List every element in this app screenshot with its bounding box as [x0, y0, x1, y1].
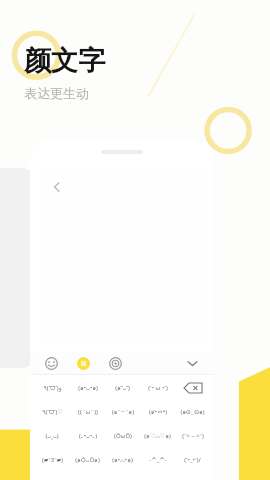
button[interactable]: (▰˘3˘▰)	[34, 448, 70, 472]
button[interactable]: (๑˘︶˘๑)	[105, 400, 140, 424]
staticText: 表达更生动	[24, 85, 89, 101]
button[interactable]: (๑•̀ㅂ•́)	[140, 400, 175, 424]
button[interactable]: (ᴗ˳ᴗ)	[34, 424, 70, 448]
staticText: (๑ʘ‿ʘ๑)	[180, 407, 205, 417]
staticText: (˘^ ‒ ^˘)	[182, 432, 204, 440]
staticText: (๑•⌓•๑)	[112, 455, 133, 465]
button[interactable]: ٩(ˊᗜˋ)♡	[34, 400, 70, 424]
staticText: (´• ω •`)	[148, 384, 168, 392]
button[interactable]: ٩(ˊᗜˋ)و	[34, 376, 70, 400]
button[interactable]: (｡•ᴗ•｡)	[70, 424, 105, 448]
button[interactable]: (๑˃̵ᴗ˂̵)	[105, 376, 140, 400]
staticText: (๑♡⌓♡๑)	[144, 431, 171, 441]
staticText: (๑•ᴗ•๑)	[78, 383, 98, 393]
button[interactable]: Backspace	[175, 376, 210, 400]
staticText: (๑ÕᴗÕ๑)	[75, 455, 100, 465]
button[interactable]: (๑♡⌓♡๑)	[140, 424, 175, 448]
staticText: (ᴗ˳ᴗ)	[45, 432, 59, 440]
button[interactable]: (๑•ᴗ•๑)	[70, 376, 105, 400]
staticText: (๑˃̵ᴗ˂̵)	[115, 383, 130, 393]
staticText: 颜文字	[24, 44, 105, 78]
staticText: ٩(ˊᗜˋ)♡	[42, 408, 63, 416]
button[interactable]: (˘^ ‒ ^˘)	[175, 424, 210, 448]
staticText: (´•_•`)/	[184, 456, 201, 464]
button[interactable]: Emoji	[42, 354, 60, 372]
staticText: (ŐωŐ)	[114, 432, 132, 440]
staticText: (๑•̀ㅂ•́)	[149, 407, 167, 417]
staticText: (๑˘︶˘๑)	[112, 407, 134, 417]
staticText: (( ˘ω˘ ))	[78, 408, 98, 416]
staticText: -ᄉ_ᄉ-	[149, 456, 167, 464]
staticText: (▰˘3˘▰)	[42, 456, 63, 464]
staticText: ٩(ˊᗜˋ)و	[43, 384, 62, 392]
button[interactable]: (๑ʘ‿ʘ๑)	[175, 400, 210, 424]
button[interactable]: Back	[46, 176, 68, 198]
button[interactable]: Kaomoji	[74, 354, 92, 372]
button[interactable]: Settings	[106, 354, 124, 372]
button[interactable]: -ᄉ_ᄉ-	[140, 448, 175, 472]
button[interactable]: (๑•⌓•๑)	[105, 448, 140, 472]
button[interactable]: (๑ÕᴗÕ๑)	[70, 448, 105, 472]
button[interactable]: (ŐωŐ)	[105, 424, 140, 448]
button[interactable]: Collapse keyboard	[182, 353, 202, 373]
button[interactable]: (´•_•`)/	[175, 448, 210, 472]
staticText: (｡•ᴗ•｡)	[79, 432, 97, 440]
button[interactable]: (´• ω •`)	[140, 376, 175, 400]
button[interactable]: (( ˘ω˘ ))	[70, 400, 105, 424]
